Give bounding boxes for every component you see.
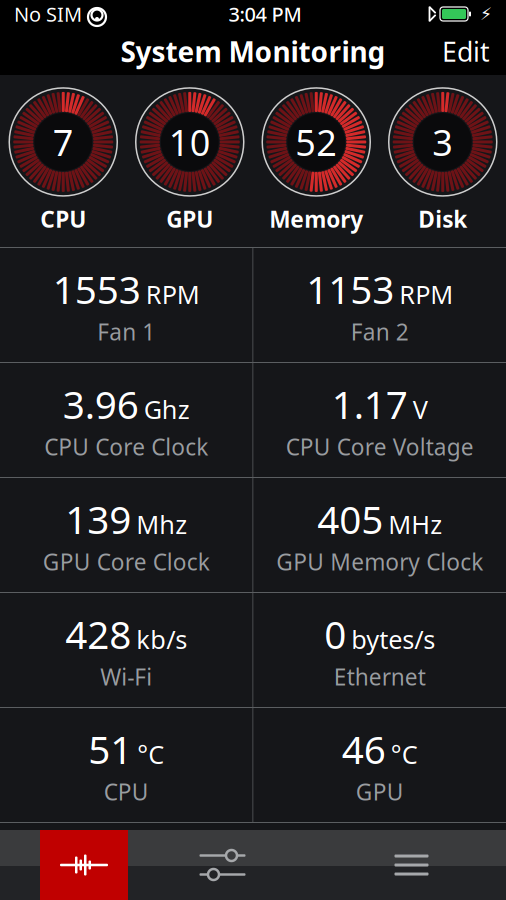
button[interactable]: 1153 (253, 248, 506, 362)
button[interactable]: 139 (0, 478, 252, 592)
button[interactable]: 428 (0, 593, 252, 707)
staticText: GPU Memory Clock (276, 547, 483, 577)
staticText: 139 (65, 493, 131, 545)
button[interactable]: More (317, 830, 506, 900)
staticText: Ghz (144, 392, 190, 426)
staticText: CPU (104, 777, 149, 807)
staticText: V (413, 392, 428, 426)
staticText: RPM (399, 277, 453, 311)
button[interactable]: 0 (253, 593, 506, 707)
staticText: GPU (166, 204, 213, 234)
staticText: Wi-Fi (100, 662, 152, 692)
staticText: 428 (65, 608, 131, 660)
staticText: CPU Core Clock (44, 432, 208, 462)
staticText: kb/s (136, 622, 187, 656)
staticText: MHz (388, 507, 442, 541)
button[interactable]: 46 (253, 708, 506, 822)
staticText: 51 (88, 723, 132, 775)
staticText: CPU Core Voltage (286, 432, 474, 462)
staticText: CPU (40, 204, 86, 234)
button[interactable]: Edit (426, 24, 506, 79)
button[interactable]: Settings (128, 830, 317, 900)
staticText: 10 (169, 118, 211, 166)
staticText: GPU Core Clock (43, 547, 210, 577)
staticText: RPM (146, 277, 200, 311)
staticText: 1553 (53, 263, 141, 315)
staticText: Disk (418, 204, 467, 234)
button[interactable]: Monitoring (40, 830, 128, 900)
staticText: bytes/s (351, 622, 435, 656)
staticText: Fan 1 (97, 317, 155, 347)
staticText: Memory (269, 204, 363, 234)
staticText: No SIM (14, 1, 82, 27)
button[interactable]: 51 (0, 708, 252, 822)
staticText: Edit (442, 34, 490, 69)
staticText: 3:04 PM (228, 1, 301, 27)
staticText: 0 (324, 608, 346, 660)
staticText: °C (137, 737, 164, 771)
button[interactable]: 3.96 (0, 363, 252, 477)
staticText: Fan 2 (351, 317, 409, 347)
staticText: 1.17 (332, 378, 408, 430)
button[interactable]: 405 (253, 478, 506, 592)
staticText: Mhz (136, 507, 187, 541)
staticText: GPU (356, 777, 404, 807)
staticText: 3.96 (63, 378, 139, 430)
staticText: °C (391, 737, 418, 771)
button[interactable]: 1553 (0, 248, 252, 362)
staticText: System Monitoring (120, 33, 385, 70)
staticText: 1153 (306, 263, 394, 315)
staticText: Ethernet (334, 662, 426, 692)
staticText: 3 (432, 118, 453, 166)
staticText: 405 (317, 493, 383, 545)
staticText: 7 (53, 118, 74, 166)
staticText: 46 (342, 723, 386, 775)
staticText: 52 (295, 118, 337, 166)
staticText: ⚡︎ (480, 4, 492, 24)
button[interactable]: 1.17 (253, 363, 506, 477)
